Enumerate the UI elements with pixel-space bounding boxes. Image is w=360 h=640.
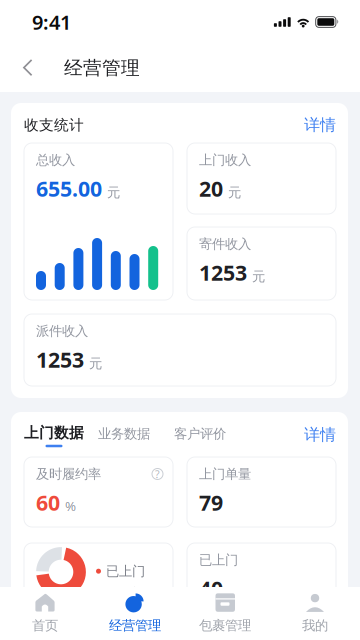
staticText: 上门收入 bbox=[199, 152, 251, 168]
staticText: 上门数据 bbox=[24, 424, 84, 442]
staticText: 655.00 bbox=[36, 174, 102, 203]
staticText: 1253 bbox=[36, 345, 84, 374]
staticText: 待上门 bbox=[106, 585, 145, 602]
button[interactable]: Back bbox=[0, 44, 64, 92]
staticText: 40 bbox=[199, 574, 223, 603]
staticText: % bbox=[65, 497, 76, 515]
staticText: 元 bbox=[107, 184, 120, 201]
staticText: 及时履约率 bbox=[36, 466, 101, 482]
staticText: 20 bbox=[199, 174, 223, 203]
staticText: 上门单量 bbox=[199, 466, 251, 482]
staticText: 元 bbox=[228, 184, 241, 201]
staticText: 经营管理 bbox=[109, 617, 161, 634]
button[interactable]: 上门数据 bbox=[24, 424, 84, 447]
staticText: 9:41 bbox=[32, 9, 71, 35]
staticText: 客户评价 bbox=[174, 426, 226, 442]
staticText: 经营管理 bbox=[64, 56, 140, 79]
staticText: 首页 bbox=[32, 617, 58, 634]
button[interactable]: 包裹管理 bbox=[180, 587, 270, 640]
button[interactable]: 经营管理 bbox=[90, 587, 180, 640]
staticText: ? bbox=[155, 467, 160, 481]
staticText: 已上门 bbox=[199, 552, 238, 568]
staticText: 派件收入 bbox=[36, 323, 88, 339]
button[interactable]: 首页 bbox=[0, 587, 90, 640]
staticText: 包裹管理 bbox=[199, 617, 251, 634]
staticText: 已上门 bbox=[106, 563, 145, 579]
staticText: 详情 bbox=[304, 425, 336, 444]
staticText: 详情 bbox=[304, 115, 336, 135]
staticText: 元 bbox=[252, 268, 265, 285]
button[interactable]: 我的 bbox=[270, 587, 360, 640]
staticText: 我的 bbox=[302, 617, 328, 634]
button[interactable]: 业务数据 bbox=[84, 424, 150, 442]
staticText: 1253 bbox=[199, 258, 247, 287]
staticText: 60 bbox=[36, 488, 60, 517]
staticText: 业务数据 bbox=[98, 426, 150, 442]
staticText: 总收入 bbox=[36, 152, 75, 168]
staticText: 元 bbox=[89, 355, 102, 372]
button[interactable]: 详情 bbox=[304, 115, 336, 135]
staticText: 79 bbox=[199, 488, 223, 517]
staticText: 寄件收入 bbox=[199, 236, 251, 252]
staticText: 收支统计 bbox=[24, 116, 84, 134]
button[interactable]: 客户评价 bbox=[150, 424, 226, 442]
button[interactable]: 详情 bbox=[304, 424, 336, 444]
